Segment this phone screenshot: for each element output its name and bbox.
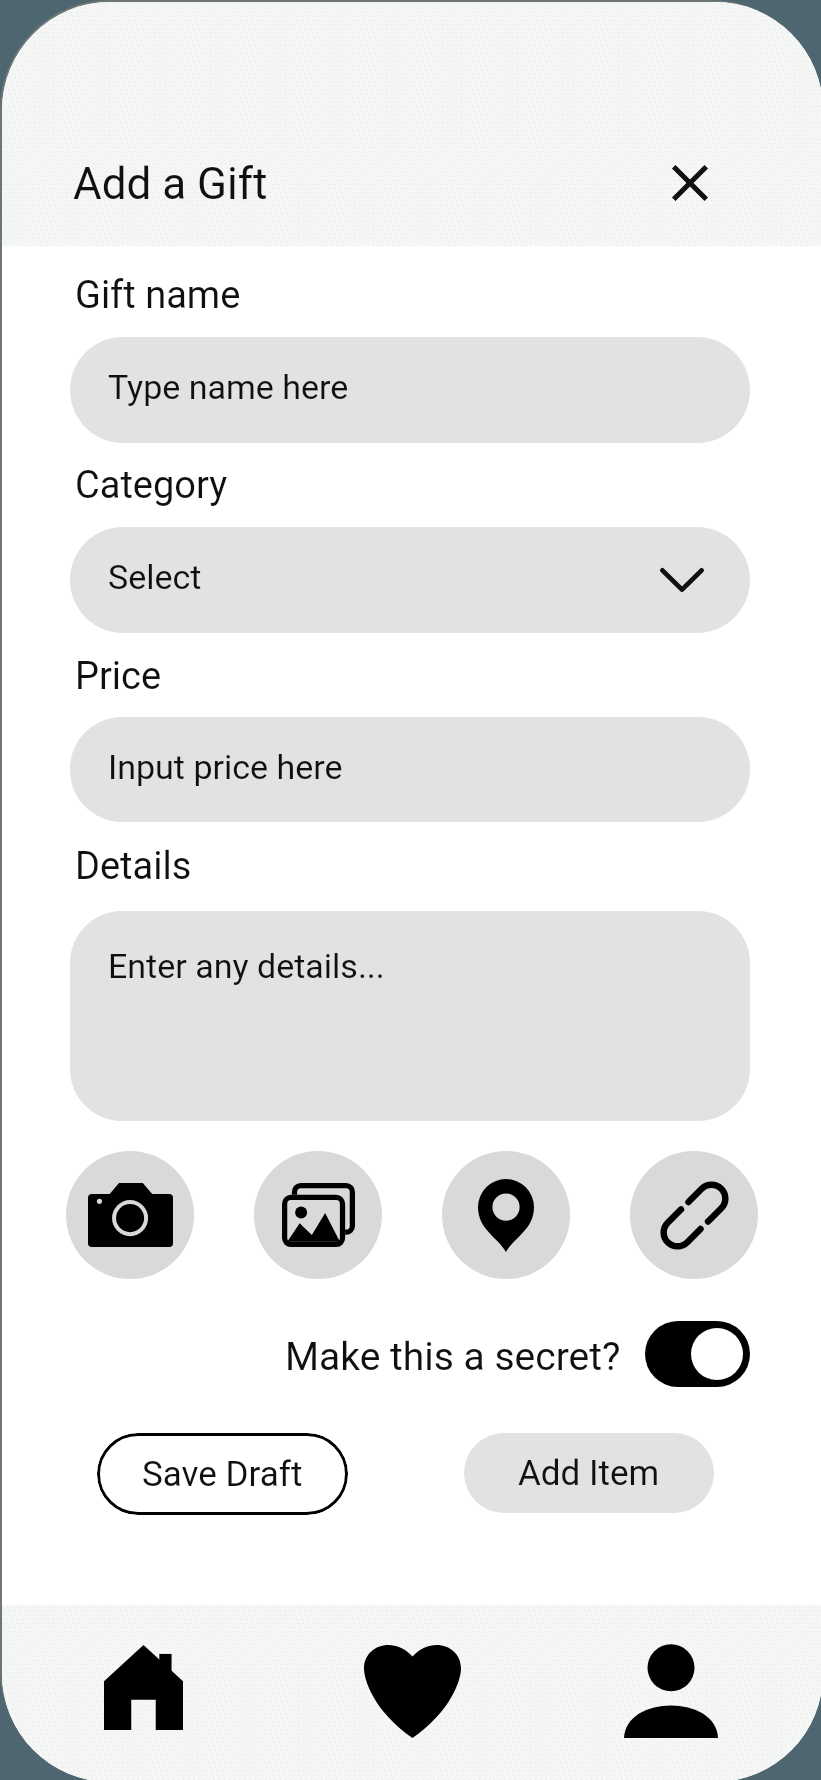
staticText: Type name here xyxy=(108,367,349,407)
button[interactable]: Location xyxy=(442,1151,570,1279)
staticText: Category xyxy=(75,463,228,508)
staticText: Details xyxy=(75,844,192,889)
button[interactable]: Make this a secret toggle xyxy=(645,1321,750,1387)
staticText: Make this a secret? xyxy=(285,1334,621,1380)
staticText: Price xyxy=(75,654,162,699)
button[interactable]: Link xyxy=(630,1151,758,1279)
staticText: Input price here xyxy=(108,747,343,787)
staticText: Gift name xyxy=(75,273,241,318)
button[interactable]: Favorites xyxy=(334,1611,491,1768)
staticText: Enter any details... xyxy=(108,946,385,986)
button[interactable]: Add Item xyxy=(464,1433,714,1513)
button[interactable]: Photos xyxy=(254,1151,382,1279)
staticText: Add a Gift xyxy=(73,158,268,210)
button[interactable]: Save Draft xyxy=(97,1433,348,1515)
staticText: Add Item xyxy=(518,1453,660,1494)
button[interactable] xyxy=(70,527,750,633)
button[interactable] xyxy=(70,717,750,822)
button[interactable]: Close xyxy=(657,150,723,216)
button[interactable] xyxy=(70,911,750,1121)
button[interactable]: Camera xyxy=(66,1151,194,1279)
button[interactable] xyxy=(70,337,750,443)
staticText: Select xyxy=(108,557,202,597)
button[interactable]: Profile xyxy=(594,1615,748,1768)
staticText: Save Draft xyxy=(142,1454,303,1495)
button[interactable]: Home xyxy=(74,1615,213,1760)
